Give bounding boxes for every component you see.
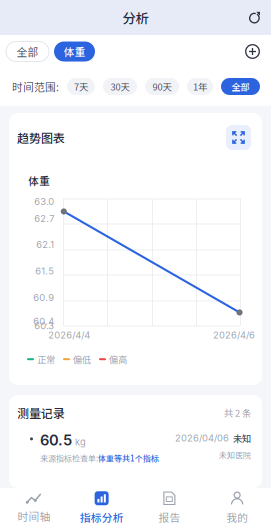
button[interactable]: 90天 bbox=[145, 78, 179, 95]
button[interactable]: 指标分析 bbox=[68, 485, 136, 528]
staticText: 偏高 bbox=[109, 352, 127, 366]
button[interactable]: 刷新 bbox=[249, 11, 261, 23]
staticText: 2026/4/6 bbox=[213, 329, 255, 341]
staticText: 体重 bbox=[28, 173, 50, 188]
staticText: 我的 bbox=[226, 509, 248, 525]
button[interactable]: 体重 bbox=[54, 41, 95, 61]
button[interactable]: 60.5 bbox=[9, 421, 262, 464]
staticText: 全部 bbox=[231, 80, 249, 93]
staticText: 63.0 bbox=[34, 196, 54, 207]
button[interactable]: 全部 bbox=[6, 41, 49, 61]
staticText: 时间轴 bbox=[17, 508, 50, 524]
button[interactable]: 报告 bbox=[135, 485, 203, 528]
staticText: 60.3 bbox=[34, 320, 54, 331]
staticText: 体重 bbox=[63, 44, 85, 59]
staticText: 共 2 条 bbox=[224, 406, 251, 419]
button[interactable]: 全屏 bbox=[226, 125, 251, 150]
staticText: 61.5 bbox=[35, 265, 54, 277]
staticText: 未知 bbox=[233, 431, 251, 445]
button[interactable]: 添加 bbox=[245, 44, 260, 59]
staticText: 指标分析 bbox=[80, 509, 124, 525]
staticText: kg bbox=[75, 436, 86, 448]
staticText: 时间范围: bbox=[12, 79, 59, 94]
staticText: 全部 bbox=[16, 44, 38, 59]
button[interactable]: 7天 bbox=[67, 78, 95, 95]
button[interactable]: 我的 bbox=[203, 485, 271, 528]
button[interactable]: 全部 bbox=[221, 78, 260, 95]
button[interactable]: 30天 bbox=[103, 78, 137, 95]
staticText: 60.5 bbox=[40, 431, 72, 449]
staticText: 2026/04/06 bbox=[175, 432, 229, 444]
button[interactable]: 时间轴 bbox=[0, 486, 68, 528]
staticText: 7天 bbox=[74, 80, 88, 93]
staticText: 测量记录 bbox=[17, 404, 65, 421]
staticText: 未知医院 bbox=[219, 449, 251, 460]
staticText: 趋势图表 bbox=[17, 129, 65, 146]
staticText: 90天 bbox=[152, 80, 171, 93]
button[interactable]: 1年 bbox=[187, 78, 213, 95]
staticText: 62.7 bbox=[34, 213, 54, 224]
staticText: 2026/4/4 bbox=[48, 329, 90, 341]
staticText: 分析 bbox=[122, 8, 148, 27]
staticText: 60.9 bbox=[33, 292, 54, 303]
staticText: 30天 bbox=[110, 80, 129, 93]
staticText: 来源指标检查单: bbox=[40, 452, 98, 464]
staticText: 报告 bbox=[158, 509, 180, 525]
staticText: 1年 bbox=[193, 80, 207, 93]
staticText: 62.1 bbox=[36, 239, 54, 250]
staticText: 偏低 bbox=[73, 352, 91, 366]
staticText: 体重等共1个指标 bbox=[98, 452, 159, 464]
staticText: 60.4 bbox=[33, 316, 54, 327]
staticText: 正常 bbox=[37, 352, 55, 366]
